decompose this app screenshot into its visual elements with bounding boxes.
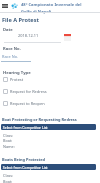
button[interactable]: Pick date — [62, 32, 72, 42]
staticText: Hearing Type — [3, 70, 31, 76]
staticText: File A Protest — [2, 16, 39, 24]
staticText: Date — [3, 27, 13, 33]
button[interactable]: Request to Reopen — [0, 99, 100, 108]
button[interactable]: Select from Competitor List — [1, 164, 96, 170]
staticText: 48° Campionato Invernale del — [21, 2, 82, 8]
staticText: Boat: — [3, 179, 13, 183]
staticText: Request to Reopen — [10, 101, 45, 106]
staticText: Protest — [10, 77, 24, 82]
staticText: Class: — [3, 133, 14, 138]
staticText: Boats Being Protested — [2, 157, 46, 162]
staticText: Select from Competitor List — [1, 125, 48, 130]
staticText: Boat Protesting or Requesting Redress — [2, 117, 77, 122]
staticText: Class: — [3, 173, 14, 178]
button[interactable]: Select from Competitor List — [1, 124, 96, 130]
staticText: Select from Competitor List — [1, 165, 48, 170]
button[interactable]: Request for Redress — [0, 87, 100, 96]
staticText: 2018-12-11 — [18, 33, 39, 38]
button[interactable]: Menu — [1, 2, 9, 10]
staticText: Race No. — [2, 54, 19, 59]
staticText: Golfo di Napoli — [21, 9, 52, 15]
staticText: Race No. — [3, 46, 21, 52]
staticText: Request for Redress — [10, 89, 47, 94]
staticText: Boat: — [3, 138, 13, 143]
staticText: Name: — [3, 144, 15, 149]
button[interactable]: Protest — [0, 75, 100, 84]
